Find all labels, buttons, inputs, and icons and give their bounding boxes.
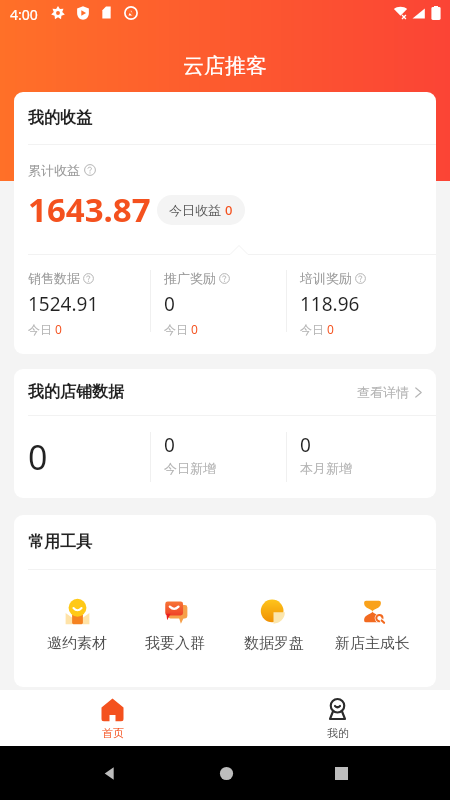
staticText: 1524.91 xyxy=(28,291,99,317)
staticText: 销售数据 xyxy=(28,270,80,286)
staticText: 4:00 xyxy=(10,5,38,24)
button[interactable]: 我的 xyxy=(225,690,450,746)
staticText: 今日 xyxy=(28,322,52,337)
staticText: 新店主成长 xyxy=(335,634,410,653)
staticText: 今日 xyxy=(300,322,324,337)
staticText: 0 xyxy=(300,432,311,458)
staticText: 0 xyxy=(225,201,233,219)
staticText: 0 xyxy=(164,291,175,317)
staticText: 1643.87 xyxy=(28,187,151,232)
button[interactable]: 新店主成长 xyxy=(323,598,422,653)
button[interactable]: 数据罗盘 xyxy=(224,598,323,653)
staticText: 累计收益 xyxy=(28,162,80,178)
staticText: 首页 xyxy=(102,726,124,740)
staticText: 0 xyxy=(28,434,48,480)
staticText: 0 xyxy=(164,432,175,458)
staticText: 查看详情 xyxy=(357,384,409,400)
staticText: 0 xyxy=(327,321,334,337)
staticText: 今日新增 xyxy=(164,460,216,476)
staticText: 我的收益 xyxy=(28,108,92,128)
button[interactable]: 首页 xyxy=(0,690,225,746)
staticText: 我的店铺数据 xyxy=(28,382,124,402)
other: Back xyxy=(102,766,117,781)
staticText: 常用工具 xyxy=(28,532,92,552)
other: Home xyxy=(219,766,234,781)
button[interactable]: 查看详情 xyxy=(349,378,436,406)
staticText: 培训奖励 xyxy=(300,270,352,286)
staticText: 我的 xyxy=(327,726,349,740)
staticText: 推广奖励 xyxy=(164,270,216,286)
button[interactable]: 我要入群 xyxy=(126,598,224,653)
staticText: 118.96 xyxy=(300,291,360,317)
staticText: 0 xyxy=(55,321,62,337)
staticText: 云店推客 xyxy=(183,53,267,79)
staticText: 邀约素材 xyxy=(47,634,107,653)
staticText: 0 xyxy=(191,321,198,337)
staticText: 今日 xyxy=(164,322,188,337)
staticText: 今日收益 xyxy=(169,202,221,218)
staticText: 数据罗盘 xyxy=(244,634,304,653)
button[interactable]: 邀约素材 xyxy=(28,598,126,653)
staticText: 我要入群 xyxy=(145,634,205,653)
staticText: 本月新增 xyxy=(300,460,352,476)
